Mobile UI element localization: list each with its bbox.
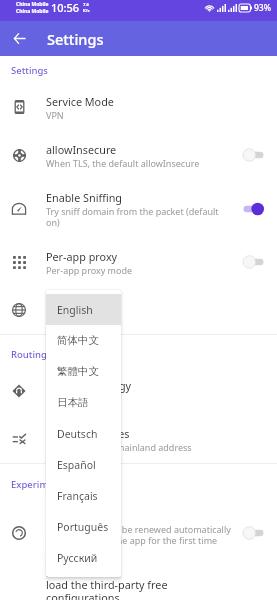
staticText: Predefined rules [46,426,130,441]
button[interactable]: Русский [46,542,121,573]
staticText: 10:56 [51,0,80,15]
staticText: English [57,303,93,317]
staticText: Español [57,458,96,472]
button[interactable]: Toggle [243,202,264,216]
staticText: VPN [46,109,64,121]
staticText: China Mobile [16,1,49,8]
button[interactable]: Predefined rules [0,415,277,463]
button[interactable]: Toggle [243,526,264,540]
staticText: allowInsecure [46,142,117,157]
staticText: Domain Strategy [46,378,132,393]
staticText: Settings [47,29,104,49]
staticText: When TLS, the default allowInsecure [46,157,200,169]
staticText: Experimental [11,478,72,491]
staticText: 7.6 [83,2,89,8]
staticText: Routing [11,348,47,361]
button[interactable]: allowInsecure [0,131,277,179]
staticText: Domain strategy [46,393,117,405]
button[interactable]: 日本語 [46,387,121,418]
staticText: 日本語 [57,396,89,409]
button[interactable]: Preload load the third-party free config… [0,568,277,600]
staticText: 简体中文 [57,334,99,347]
staticText: Português [57,520,109,534]
button[interactable]: Service Mode [0,83,277,131]
staticText: Deutsch [57,427,98,441]
button[interactable]: Français [46,480,121,511]
staticText: Service Mode [46,94,114,109]
staticText: 繁體中文 [57,365,99,378]
staticText: 93% [254,2,271,14]
button[interactable]: Per-app proxy [0,238,277,286]
staticText: Try sniff domain from the packet (defaul… [46,205,234,228]
staticText: Per-app proxy [46,249,118,264]
button[interactable]: Deutsch [46,418,121,449]
staticText: Русский [57,551,98,565]
button[interactable]: English [46,294,121,325]
button[interactable]: Language [0,286,277,334]
button[interactable]: Auto update [0,497,277,568]
staticText: Subscriptions will be renewed automatica… [46,523,234,557]
staticText: K/s [83,8,90,14]
button[interactable]: Español [46,449,121,480]
button[interactable]: Português [46,511,121,542]
button[interactable]: Toggle [243,255,264,269]
button[interactable]: 简体中文 [46,325,121,356]
staticText: Français [57,489,98,503]
staticText: China Mobile [16,8,49,15]
staticText: Settings [11,64,48,77]
button[interactable]: 繁體中文 [46,356,121,387]
button[interactable]: Enable Sniffing [0,179,277,238]
staticText: Enable Sniffing [46,190,122,205]
staticText: Preload load the third-party free config… [46,565,168,600]
staticText: Bypass LAN and mainland address [46,441,192,453]
staticText: Follow system [46,312,106,324]
staticText: Language [46,297,97,312]
button[interactable]: Back [0,21,38,56]
button[interactable]: Domain Strategy [0,367,277,415]
button[interactable]: Toggle [243,148,264,162]
staticText: Per-app proxy mode [46,264,133,276]
